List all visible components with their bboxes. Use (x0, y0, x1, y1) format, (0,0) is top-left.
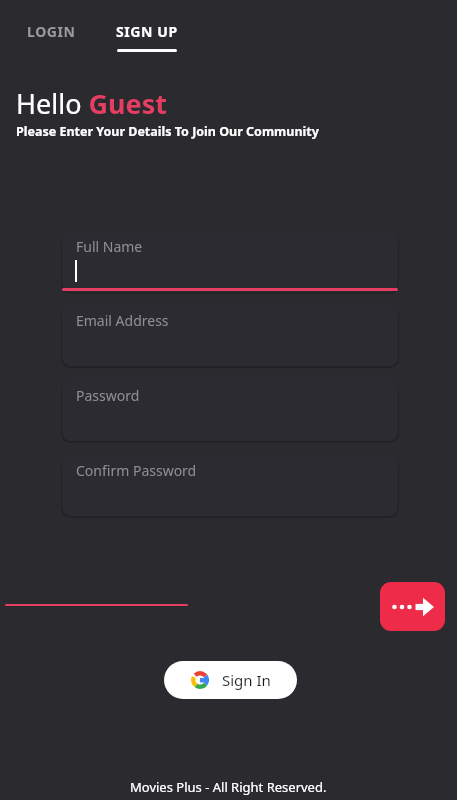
button[interactable]: Sign In (164, 661, 297, 699)
staticText: Sign In (222, 670, 271, 690)
button[interactable]: Email Address (62, 305, 398, 366)
staticText: Hello Guest (16, 85, 168, 122)
button[interactable]: LOGIN (14, 14, 89, 49)
button[interactable]: SIGN UP (104, 14, 190, 60)
staticText: Movies Plus - All Right Reserved. (130, 778, 327, 796)
button[interactable]: Confirm Password (62, 455, 398, 516)
staticText: Please Enter Your Details To Join Our Co… (16, 123, 319, 140)
staticText: SIGN UP (116, 22, 178, 41)
staticText: Confirm Password (76, 461, 197, 480)
button[interactable]: Next (380, 582, 445, 631)
staticText: Password (76, 386, 140, 405)
button[interactable]: Full Name (62, 231, 398, 292)
staticText: Full Name (76, 237, 143, 256)
button[interactable]: Password (62, 380, 398, 441)
staticText: LOGIN (27, 22, 76, 41)
staticText: Email Address (76, 311, 169, 330)
